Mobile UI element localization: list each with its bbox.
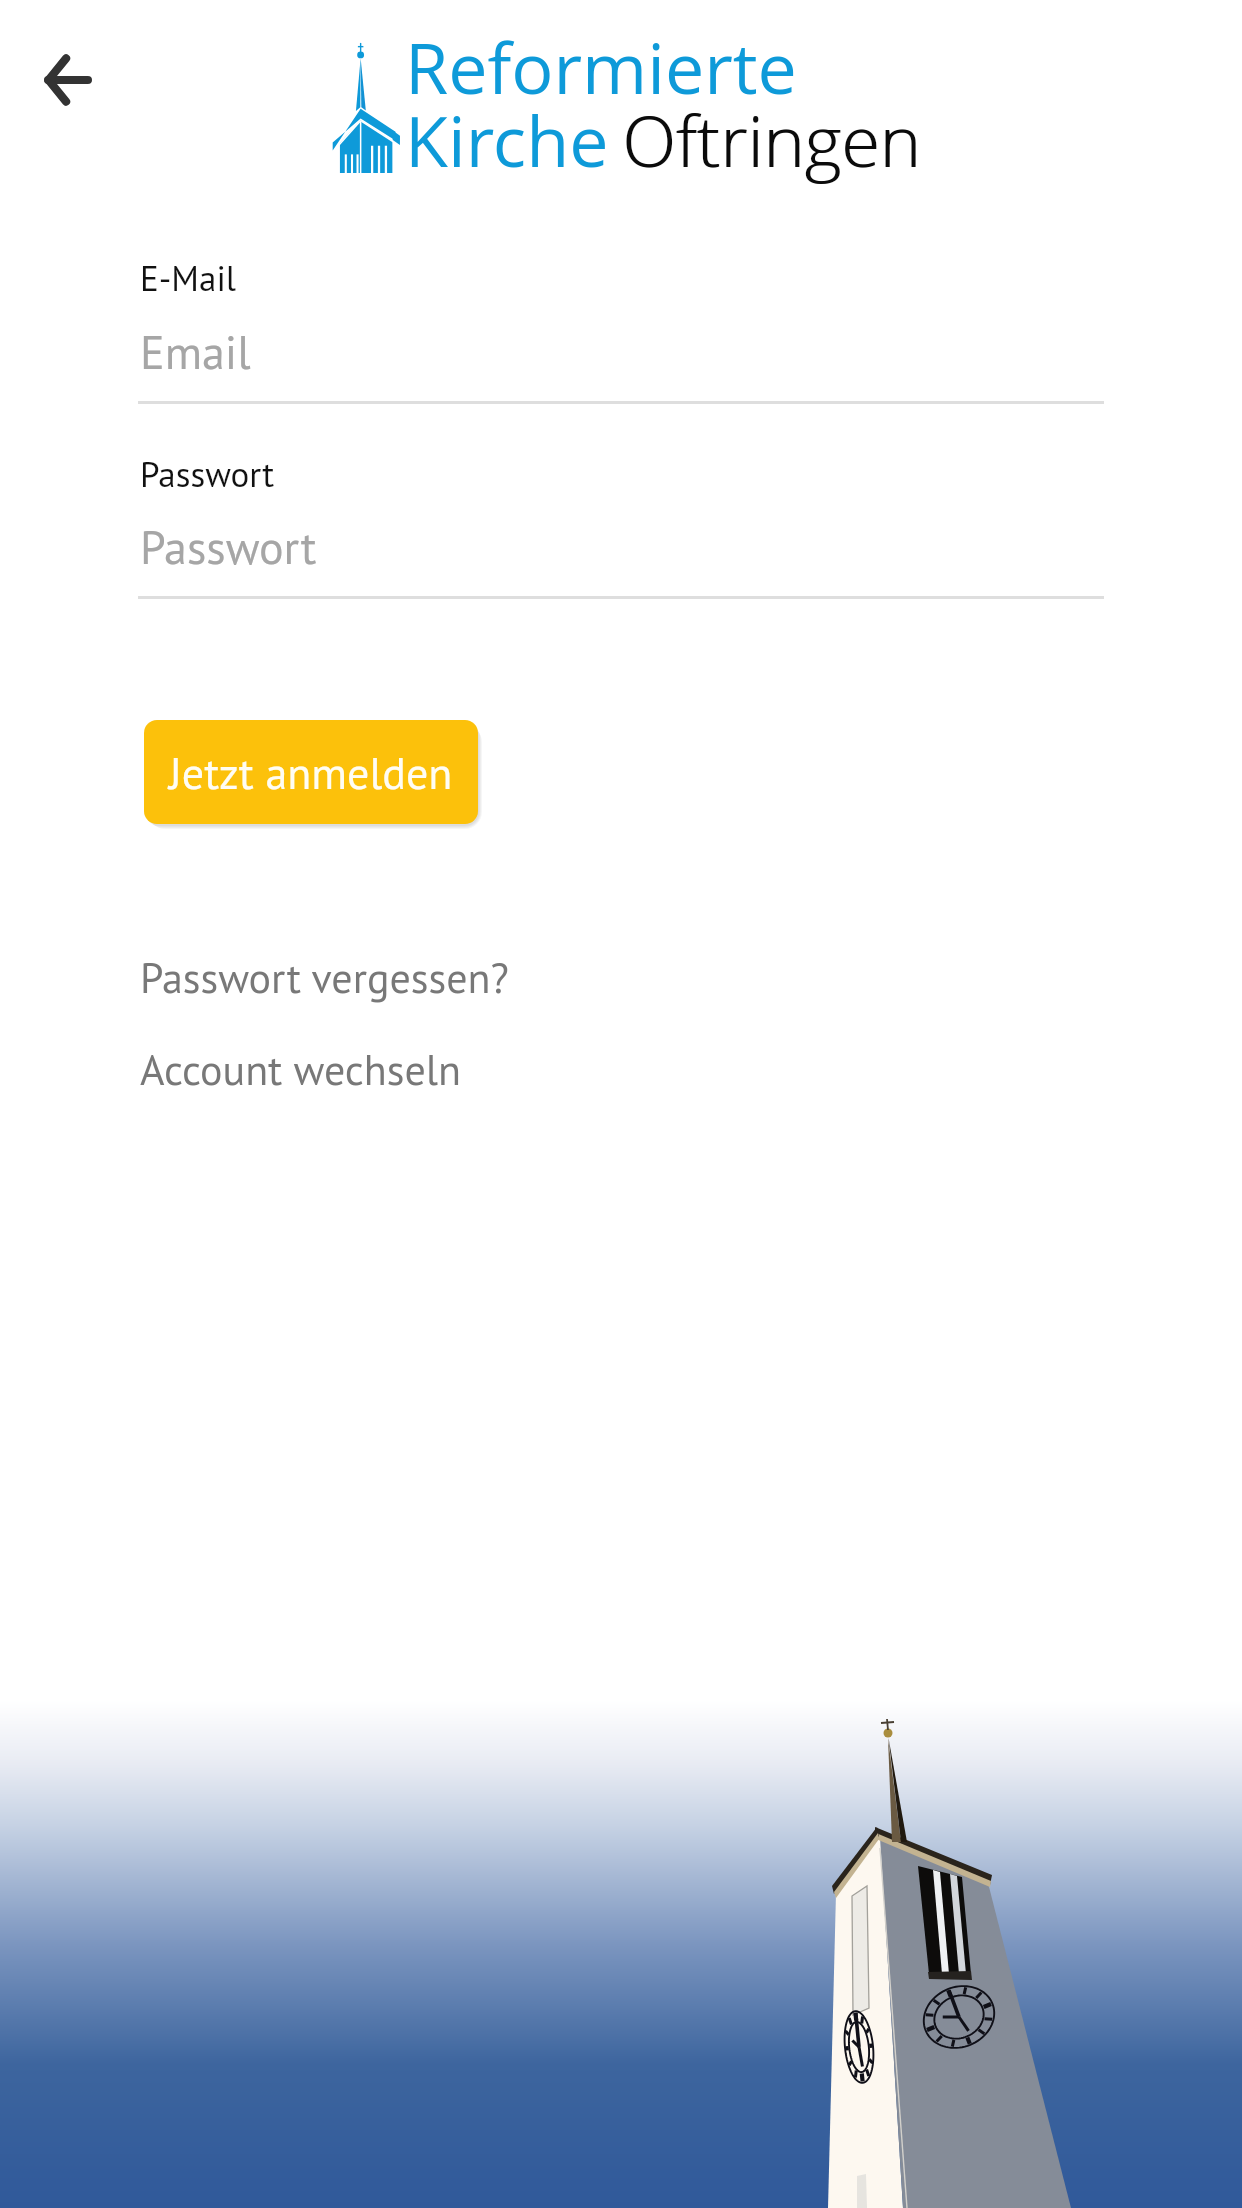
button[interactable]: Account wechseln <box>140 1042 462 1096</box>
staticText: Passwort <box>140 451 275 496</box>
staticText: Jetzt anmelden <box>169 744 453 801</box>
button[interactable]: Passwort vergessen? <box>140 950 509 1004</box>
staticText: Reformierte <box>405 19 797 114</box>
staticText: Account wechseln <box>140 1042 462 1096</box>
staticText: Oftringen <box>622 92 921 187</box>
button[interactable]: Back <box>25 37 111 123</box>
staticText: Oftringen <box>623 92 922 187</box>
staticText: Kirche <box>405 92 609 187</box>
staticText: E-Mail <box>140 255 237 300</box>
staticText: Passwort vergessen? <box>140 950 509 1004</box>
staticText: Email <box>140 322 251 382</box>
staticText: Passwort <box>140 517 317 577</box>
button[interactable]: Jetzt anmelden <box>144 720 478 824</box>
